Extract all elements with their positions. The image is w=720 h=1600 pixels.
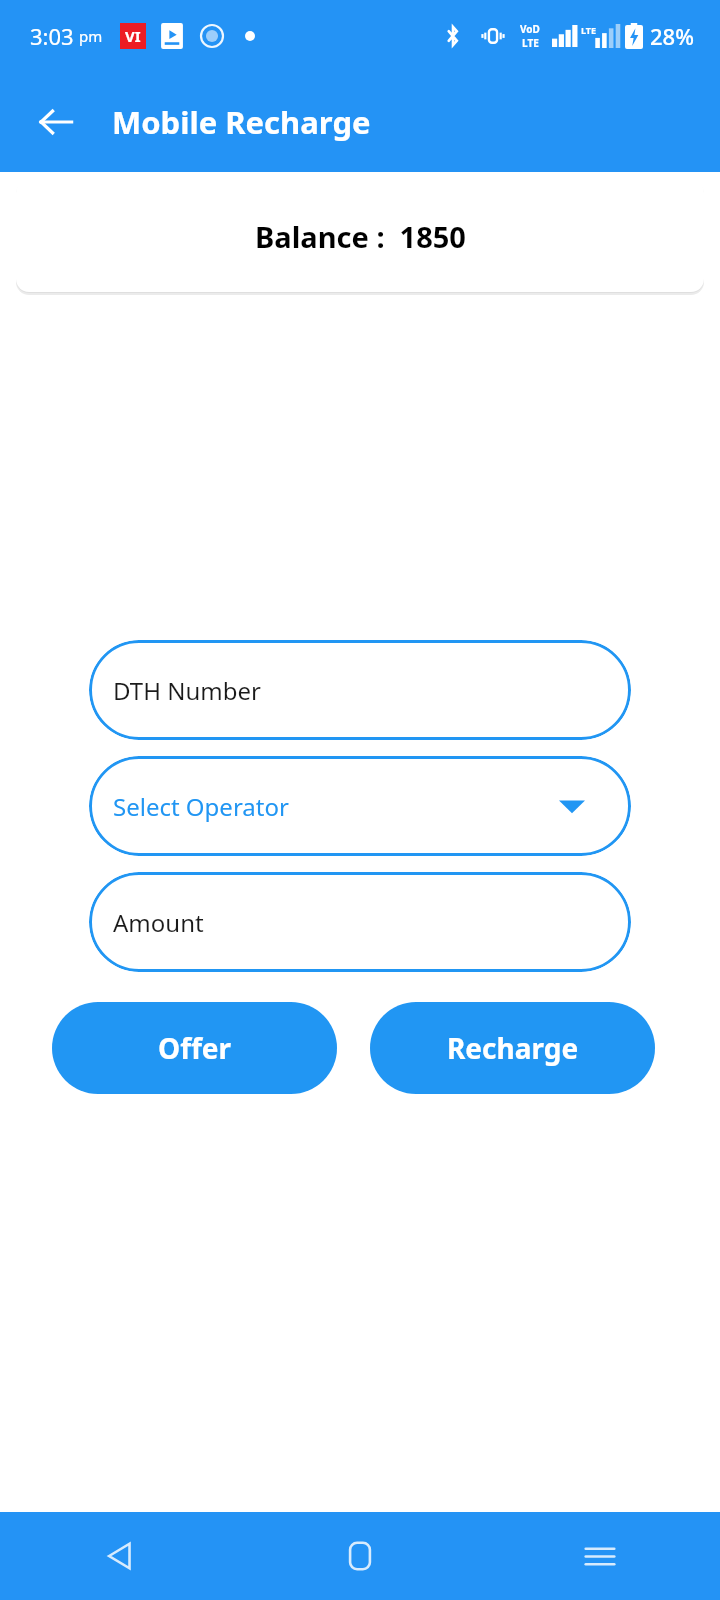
staticText: Select Operator xyxy=(113,790,289,823)
staticText: LTE xyxy=(581,24,597,36)
staticText: Recharge xyxy=(447,1029,579,1067)
button[interactable]: Back xyxy=(28,94,84,150)
staticText: VI xyxy=(125,26,141,46)
button[interactable]: Home xyxy=(240,1512,480,1600)
staticText: Balance : 1850 xyxy=(255,217,466,256)
staticText: Amount xyxy=(113,906,204,939)
staticText: Offer xyxy=(158,1029,231,1067)
staticText: 3:03 xyxy=(30,21,74,51)
button[interactable]: Balance : 1850 xyxy=(16,180,704,292)
button[interactable]: Recharge xyxy=(370,1002,655,1094)
staticText: pm xyxy=(79,26,103,46)
button[interactable]: DTH Number xyxy=(89,640,631,740)
button[interactable]: Select Operator xyxy=(89,756,631,856)
staticText: 28% xyxy=(650,21,694,51)
button[interactable]: Offer xyxy=(52,1002,337,1094)
button[interactable]: Recent apps xyxy=(480,1512,720,1600)
staticText: LTE xyxy=(522,36,539,50)
button[interactable]: Back xyxy=(0,1512,240,1600)
staticText: Mobile Recharge xyxy=(112,101,371,143)
button[interactable]: Amount xyxy=(89,872,631,972)
staticText: DTH Number xyxy=(113,674,261,707)
staticText: VoD xyxy=(520,22,540,36)
